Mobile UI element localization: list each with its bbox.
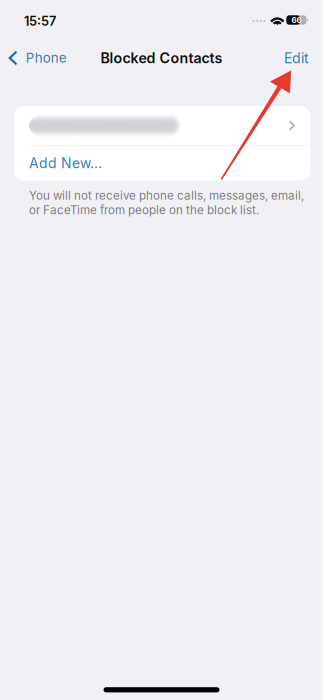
button[interactable]: Phone <box>0 43 67 73</box>
button[interactable]: Edit <box>284 42 323 73</box>
staticText: 15:57 <box>24 13 56 29</box>
staticText: Edit <box>284 49 309 66</box>
button[interactable] <box>14 106 310 145</box>
staticText: Blocked Contacts <box>100 49 222 67</box>
staticText: Add New... <box>29 155 102 171</box>
staticText: You will not receive phone calls, messag… <box>29 189 304 203</box>
staticText: or FaceTime from people on the block lis… <box>29 203 259 217</box>
staticText: Phone <box>26 50 67 66</box>
staticText: 66 <box>291 15 301 25</box>
button[interactable]: Add New... <box>14 146 310 181</box>
